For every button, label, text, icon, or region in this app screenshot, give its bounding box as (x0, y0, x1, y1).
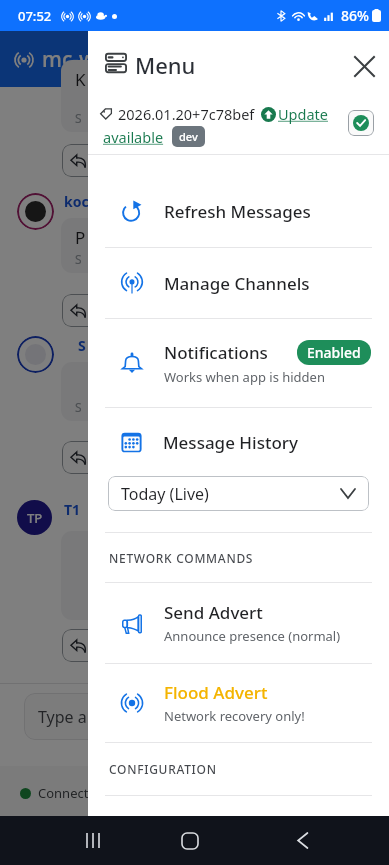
staticText: S (75, 110, 82, 126)
staticText: Manage Channels (164, 272, 310, 295)
button[interactable]: Reply (62, 144, 124, 177)
button[interactable]: Manage Channels (88, 248, 389, 318)
staticText: Menu (135, 50, 196, 80)
staticText: K (75, 68, 86, 91)
button[interactable]: Home (166, 816, 214, 865)
button[interactable]: Send Advert (88, 583, 389, 663)
staticText: Notifications (164, 341, 268, 364)
button[interactable]: Recents (68, 816, 116, 865)
staticText: Enabled (307, 343, 361, 362)
staticText: Message History (163, 431, 298, 454)
staticText: TP (27, 509, 43, 527)
staticText: Refresh Messages (164, 200, 311, 223)
staticText: Type a (38, 706, 91, 728)
staticText: 86% (341, 6, 369, 25)
button[interactable]: Reply (62, 294, 124, 327)
button[interactable]: Notifications (88, 319, 389, 407)
staticText: Flood Advert (164, 681, 268, 704)
staticText: T1 (64, 500, 81, 519)
button[interactable]: Today (Live) (108, 476, 369, 511)
staticText: NETWORK COMMANDS (109, 550, 254, 566)
staticText: Update (278, 104, 328, 124)
staticText: Works when app is hidden (164, 368, 325, 386)
staticText: Connected (38, 784, 104, 802)
staticText: S (75, 251, 82, 267)
button[interactable]: Reply (62, 629, 124, 662)
button[interactable]: available (103, 127, 164, 147)
button[interactable]: Refresh Messages (88, 175, 389, 247)
button[interactable]: Message History (88, 408, 389, 476)
button[interactable]: Reply (62, 441, 124, 474)
staticText: 07:52 (18, 7, 52, 25)
staticText: Send Advert (164, 601, 263, 624)
staticText: CONFIGURATION (109, 761, 217, 777)
staticText: S (75, 399, 82, 415)
staticText: 2026.01.20+7c78bef (118, 104, 255, 124)
staticText: Today (Live) (121, 483, 209, 505)
staticText: Announce presence (normal) (164, 627, 341, 645)
staticText: mc-w (42, 45, 96, 74)
staticText: S (78, 336, 86, 355)
staticText: P (75, 226, 86, 249)
button[interactable]: Back (278, 816, 326, 865)
button[interactable]: Close (343, 45, 385, 87)
staticText: dev (179, 129, 198, 144)
button[interactable]: Up to date (348, 110, 374, 136)
button[interactable]: Flood Advert (88, 664, 389, 742)
button[interactable]: Update (261, 104, 328, 124)
staticText: Network recovery only! (164, 707, 305, 725)
staticText: koc (64, 192, 89, 211)
